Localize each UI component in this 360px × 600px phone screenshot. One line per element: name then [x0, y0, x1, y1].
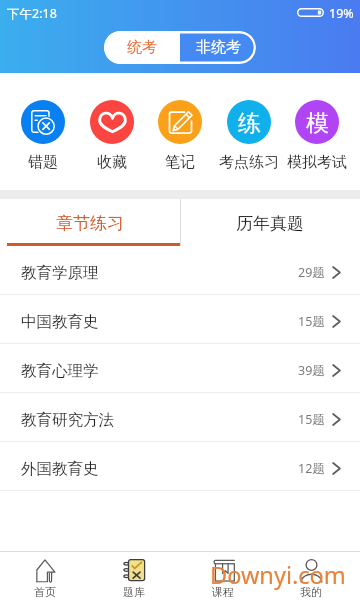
button[interactable]: 模 [284, 100, 350, 172]
button[interactable]: 非统考 [180, 31, 256, 64]
button[interactable]: 教育研究方法 [0, 393, 360, 441]
staticText: 历年真题 [236, 213, 304, 234]
button[interactable]: 教育心理学 [0, 344, 360, 392]
button[interactable]: 外国教育史 [0, 442, 360, 490]
staticText: 外国教育史 [21, 459, 99, 479]
staticText: 练 [238, 109, 261, 138]
staticText: 教育心理学 [21, 361, 99, 381]
button[interactable]: 历年真题 [180, 199, 360, 246]
staticText: 中国教育史 [21, 312, 99, 332]
staticText: Downyi.com [210, 559, 346, 591]
staticText: 我的 [300, 585, 322, 599]
staticText: 笔记 [165, 153, 195, 172]
button[interactable]: 练 [216, 100, 282, 172]
button[interactable]: 收藏 [79, 100, 145, 172]
staticText: 19% [329, 5, 354, 22]
staticText: 29题 [298, 264, 325, 281]
staticText: 15题 [298, 411, 325, 428]
button[interactable]: 笔记 [147, 100, 213, 172]
button[interactable]: 教育学原理 [0, 246, 360, 294]
button[interactable]: 题库 [107, 552, 161, 600]
staticText: 模 [306, 109, 329, 138]
staticText: 39题 [298, 362, 325, 379]
staticText: 收藏 [97, 153, 127, 172]
staticText: 章节练习 [56, 213, 124, 234]
staticText: 课程 [212, 585, 234, 599]
staticText: 题库 [123, 585, 145, 599]
staticText: 统考 [127, 38, 157, 57]
staticText: 15题 [298, 313, 325, 330]
button[interactable]: 中国教育史 [0, 295, 360, 343]
button[interactable]: 我的 [284, 552, 338, 600]
button[interactable]: 首页 [18, 552, 72, 600]
staticText: 考点练习 [219, 153, 279, 172]
staticText: 12题 [298, 460, 325, 477]
staticText: 非统考 [196, 38, 241, 57]
staticText: 教育学原理 [21, 263, 99, 283]
button[interactable]: 错题 [10, 100, 76, 172]
button[interactable]: 章节练习 [0, 199, 180, 246]
staticText: 首页 [34, 585, 56, 599]
button[interactable]: 课程 [196, 552, 250, 600]
staticText: 教育研究方法 [21, 410, 114, 430]
staticText: 错题 [28, 153, 58, 172]
staticText: 下午2:18 [7, 5, 57, 22]
button[interactable]: 统考 [104, 31, 180, 64]
staticText: 模拟考试 [287, 153, 347, 172]
